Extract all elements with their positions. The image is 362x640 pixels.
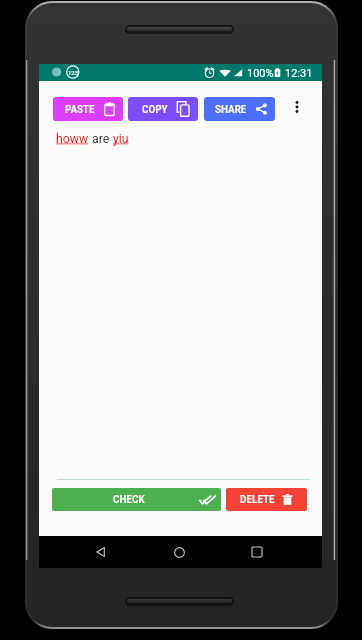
button[interactable]: Back [87,539,113,565]
button[interactable]: PASTE [53,97,123,121]
staticText: DELETE [240,493,275,506]
button[interactable]: More options [283,92,311,122]
staticText: COPY [142,103,168,116]
staticText: 12:31 [285,67,313,80]
button[interactable]: DELETE [226,488,307,511]
staticText: SHARE [215,103,247,116]
button[interactable]: SHARE [204,97,275,121]
button[interactable]: CHECK [52,488,221,511]
staticText: are [89,132,113,146]
button[interactable]: COPY [128,97,198,121]
button[interactable]: Home [166,539,192,565]
button[interactable]: Recents [244,539,270,565]
staticText: 100% [247,67,274,80]
staticText: CHECK [113,493,145,506]
staticText: PASTE [65,103,95,116]
staticText: howw [56,132,89,146]
staticText: 123 [68,69,79,76]
staticText: yiu [113,132,129,146]
